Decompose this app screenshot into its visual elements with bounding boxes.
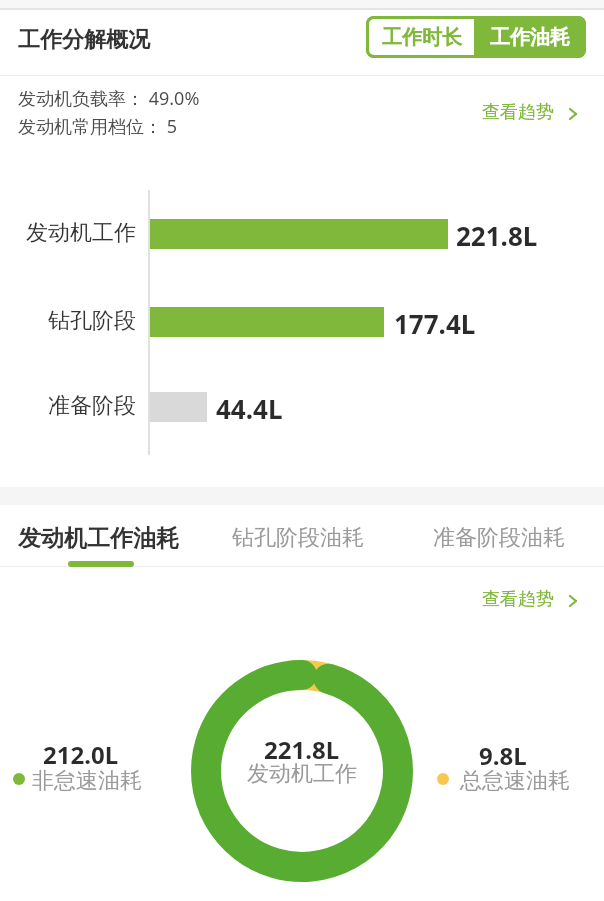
staticText: 工作油耗: [490, 25, 570, 50]
staticText: 查看趋势: [482, 101, 554, 124]
staticText: 221.8L: [264, 733, 340, 766]
button[interactable]: 准备阶段油耗: [426, 518, 586, 566]
staticText: 发动机工作: [26, 219, 136, 247]
staticText: 44.4L: [216, 391, 283, 426]
button[interactable]: 工作油耗: [474, 16, 586, 58]
staticText: 准备阶段油耗: [433, 524, 565, 552]
button[interactable]: 钻孔阶段油耗: [225, 518, 385, 566]
staticText: 准备阶段: [48, 392, 136, 420]
button[interactable]: [440, 736, 590, 796]
staticText: 钻孔阶段: [48, 307, 136, 335]
staticText: 工作时长: [382, 25, 462, 50]
staticText: 钻孔阶段油耗: [232, 524, 364, 552]
button[interactable]: 工作时长: [366, 16, 474, 58]
staticText: 发动机工作油耗: [18, 524, 179, 553]
staticText: 9.8L: [479, 739, 527, 772]
staticText: 查看趋势: [482, 588, 554, 611]
staticText: 221.8L: [456, 218, 538, 253]
staticText: 总怠速油耗: [460, 767, 570, 795]
button[interactable]: 发动机工作油耗: [10, 518, 200, 570]
staticText: 发动机常用档位： 5: [18, 114, 177, 139]
staticText: 工作分解概况: [18, 26, 150, 54]
staticText: 发动机负载率： 49.0%: [18, 86, 200, 111]
button[interactable]: 查看趋势: [480, 100, 584, 126]
staticText: 发动机工作: [247, 760, 357, 788]
button[interactable]: 查看趋势: [480, 586, 584, 612]
staticText: 177.4L: [394, 306, 476, 341]
staticText: 212.0L: [43, 738, 119, 771]
staticText: 非怠速油耗: [32, 767, 142, 795]
button[interactable]: [10, 736, 160, 796]
